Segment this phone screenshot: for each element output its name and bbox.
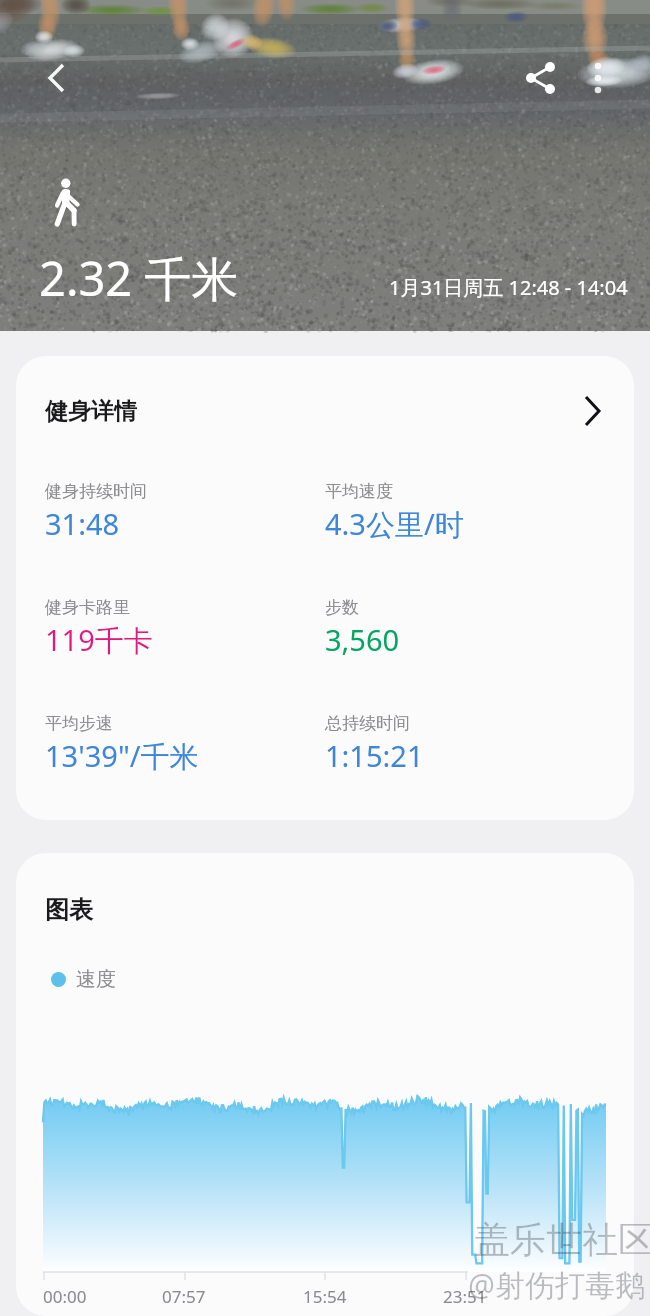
staticText: 4.3公里/时 — [325, 504, 464, 544]
staticText: 1:15:21 — [325, 736, 424, 775]
staticText: 13'39"/千米 — [45, 736, 199, 776]
staticText: 119千卡 — [45, 620, 153, 660]
staticText: 31:48 — [45, 504, 120, 543]
staticText: 图表 — [45, 895, 93, 925]
button[interactable]: Share — [515, 52, 567, 104]
staticText: 平均步速 — [45, 713, 113, 734]
staticText: 平均速度 — [325, 481, 393, 502]
staticText: 07:57 — [162, 1285, 206, 1308]
staticText: 健身详情 — [45, 397, 137, 426]
staticText: @射伤打毒鹅 — [468, 1264, 645, 1305]
staticText: 15:54 — [303, 1285, 347, 1308]
staticText: 盖乐世社区 — [474, 1217, 650, 1262]
staticText: 总持续时间 — [325, 713, 410, 734]
staticText: 3,560 — [325, 620, 400, 659]
staticText: 23:51 — [443, 1285, 487, 1308]
staticText: 步数 — [325, 597, 359, 618]
button[interactable]: 健身详情 — [16, 356, 634, 466]
staticText: 健身持续时间 — [45, 481, 147, 502]
staticText: 速度 — [76, 967, 116, 992]
button[interactable]: Back — [30, 52, 82, 104]
staticText: 1月31日周五 12:48 - 14:04 — [389, 274, 628, 301]
staticText: 健身卡路里 — [45, 597, 130, 618]
staticText: 2.32 千米 — [39, 246, 239, 310]
button[interactable]: More options — [572, 52, 624, 104]
staticText: 00:00 — [43, 1285, 87, 1308]
